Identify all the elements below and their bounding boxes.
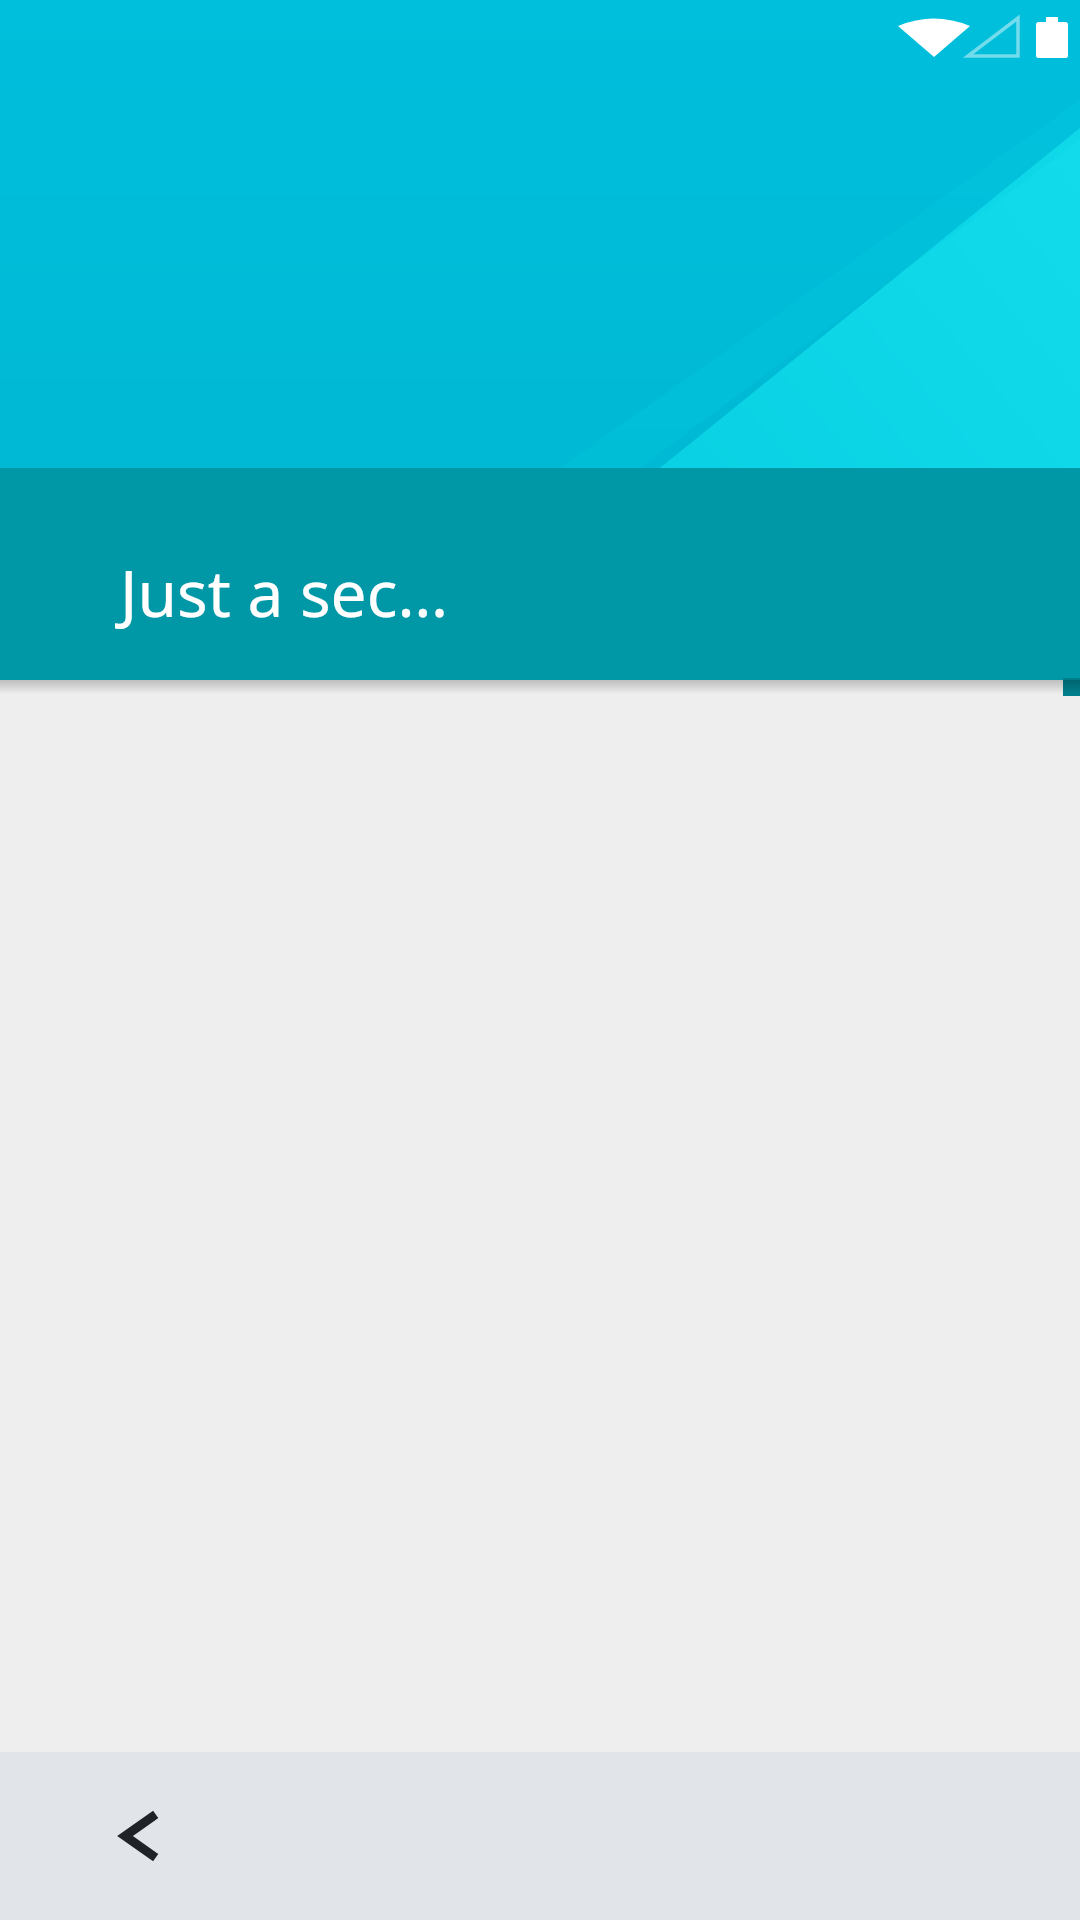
- staticText: Just a sec…: [120, 549, 449, 636]
- button[interactable]: Back: [65, 1764, 209, 1908]
